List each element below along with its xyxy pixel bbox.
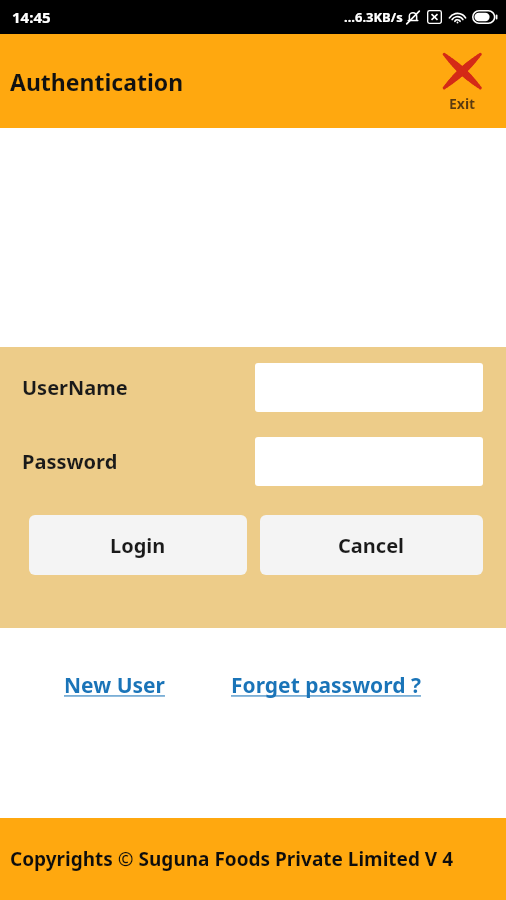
- button[interactable]: Forget password ?: [227, 667, 425, 704]
- button[interactable]: Login: [29, 515, 247, 575]
- staticText: Authentication: [10, 66, 184, 97]
- staticText: New User: [64, 671, 171, 700]
- staticText: Forget password ?: [231, 671, 421, 700]
- staticText: Exit: [449, 94, 476, 113]
- staticText: Copyrights © Suguna Foods Private Limite…: [10, 846, 454, 872]
- staticText: Password: [22, 448, 118, 475]
- staticText: UserName: [22, 374, 128, 401]
- button[interactable]: New User: [60, 667, 175, 704]
- staticText: 14:45: [12, 7, 51, 27]
- staticText: Login: [110, 532, 166, 559]
- button[interactable]: Exit: [434, 48, 490, 115]
- staticText: Cancel: [338, 532, 405, 559]
- button[interactable]: Cancel: [260, 515, 483, 575]
- staticText: ...6.3KB/s: [344, 8, 403, 26]
